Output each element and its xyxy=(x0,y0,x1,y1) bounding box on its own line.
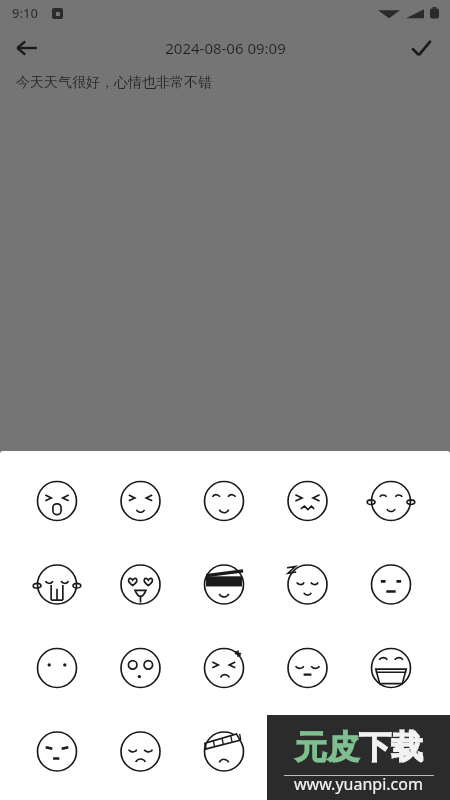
button[interactable]: Save xyxy=(400,27,442,69)
button[interactable]: Emoji xyxy=(200,561,248,609)
button[interactable]: Emoji xyxy=(200,477,248,525)
staticText: 2024-08-06 09:09 xyxy=(165,38,286,58)
staticText: www.yuanpi.com xyxy=(294,773,423,795)
staticText: 今天天气很好，心情也非常不错 xyxy=(16,74,212,92)
button[interactable]: Emoji xyxy=(117,477,165,525)
button[interactable]: Emoji xyxy=(33,561,81,609)
button[interactable]: Emoji xyxy=(284,561,332,609)
button[interactable]: Emoji xyxy=(367,561,415,609)
staticText: 下载 xyxy=(359,727,423,767)
button[interactable]: Back xyxy=(6,27,48,69)
button[interactable]: Emoji xyxy=(200,728,248,776)
button[interactable]: Emoji xyxy=(33,477,81,525)
button[interactable]: Emoji xyxy=(117,561,165,609)
button[interactable]: Emoji xyxy=(284,644,332,692)
button[interactable]: Emoji xyxy=(367,644,415,692)
button[interactable]: Emoji xyxy=(117,644,165,692)
staticText: 元皮 xyxy=(295,727,359,767)
button[interactable]: Emoji xyxy=(200,644,248,692)
button[interactable]: Emoji xyxy=(33,728,81,776)
button[interactable]: Emoji xyxy=(33,644,81,692)
button[interactable]: Emoji xyxy=(367,477,415,525)
staticText: 9:10 xyxy=(12,4,38,22)
button[interactable]: Emoji xyxy=(284,477,332,525)
button[interactable]: Emoji xyxy=(117,728,165,776)
